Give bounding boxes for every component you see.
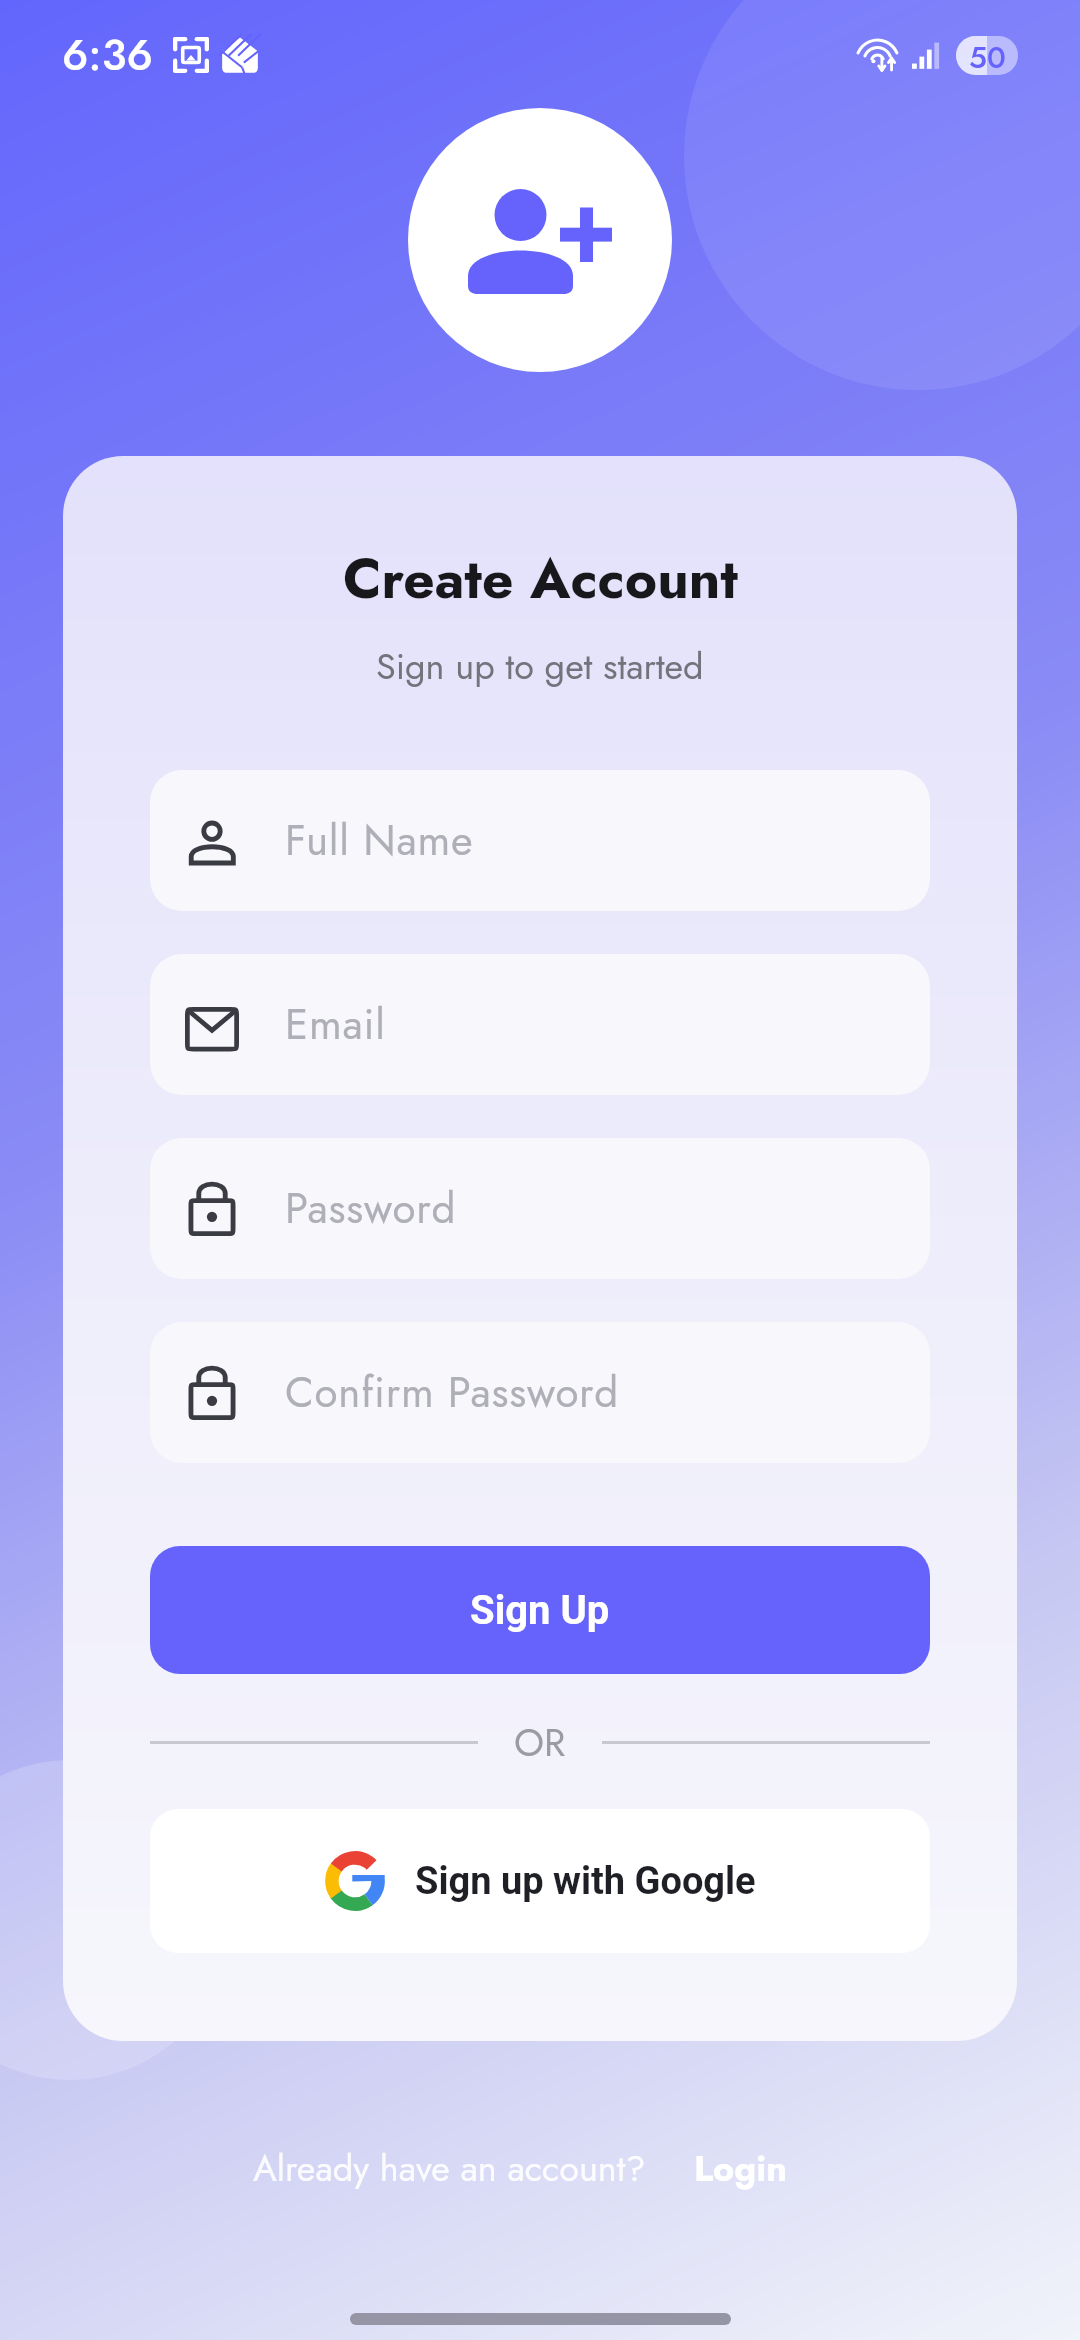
- staticText: Full Name: [285, 810, 474, 871]
- staticText: Sign Up: [470, 1587, 610, 1634]
- staticText: Login: [694, 2142, 787, 2194]
- staticText: 6:36: [62, 24, 153, 86]
- other: Wi-Fi: [859, 33, 903, 77]
- staticText: Email: [285, 994, 386, 1055]
- button[interactable]: Full Name: [150, 770, 930, 911]
- button[interactable]: Sign up with Google: [150, 1809, 930, 1953]
- staticText: Already have an account?: [253, 2142, 646, 2194]
- other: Screenshot: [173, 37, 209, 73]
- button[interactable]: Login: [646, 2142, 791, 2194]
- staticText: 50: [969, 36, 1006, 75]
- button[interactable]: Email: [150, 954, 930, 1095]
- staticText: Sign up with Google: [415, 1859, 756, 1904]
- other: Mail: [221, 36, 259, 74]
- staticText: OR: [514, 1715, 566, 1770]
- button[interactable]: Password: [150, 1138, 930, 1279]
- staticText: Password: [285, 1178, 457, 1239]
- staticText: Sign up to get started: [376, 640, 704, 692]
- button[interactable]: Sign Up: [150, 1546, 930, 1674]
- staticText: Create Account: [343, 539, 738, 618]
- button[interactable]: Confirm Password: [150, 1322, 930, 1463]
- other: Mobile signal: [912, 40, 943, 71]
- staticText: Confirm Password: [285, 1362, 620, 1423]
